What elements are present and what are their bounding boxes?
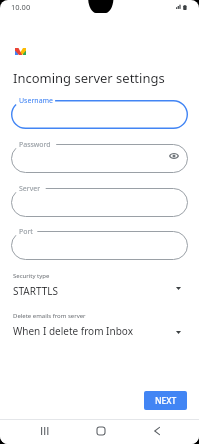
button[interactable]: Username	[11, 100, 188, 129]
other: Show password	[169, 153, 179, 159]
button[interactable]: Home	[86, 420, 115, 441]
button[interactable]: NEXT	[144, 391, 187, 410]
staticText: STARTTLS	[13, 284, 59, 298]
button[interactable]: Back	[142, 420, 171, 441]
other: Expand	[176, 287, 181, 290]
other: Expand	[176, 331, 181, 334]
staticText: Security type	[13, 272, 50, 280]
staticText: When I delete from Inbox	[13, 324, 133, 338]
button[interactable]: Recents	[30, 420, 59, 441]
button[interactable]: Password	[11, 144, 188, 173]
button[interactable]: Security type	[0, 272, 199, 298]
staticText: Server	[19, 184, 41, 194]
staticText: NEXT	[155, 395, 177, 407]
staticText: Username	[19, 96, 54, 106]
staticText: Port	[19, 227, 33, 237]
staticText: Delete emails from server	[13, 312, 86, 320]
button[interactable]: Delete emails from server	[0, 312, 199, 338]
staticText: 10.00	[11, 2, 31, 12]
button[interactable]: Port	[11, 231, 188, 260]
staticText: Password	[19, 140, 51, 150]
button[interactable]: Server	[11, 188, 188, 217]
staticText: Incoming server settings	[13, 69, 165, 87]
